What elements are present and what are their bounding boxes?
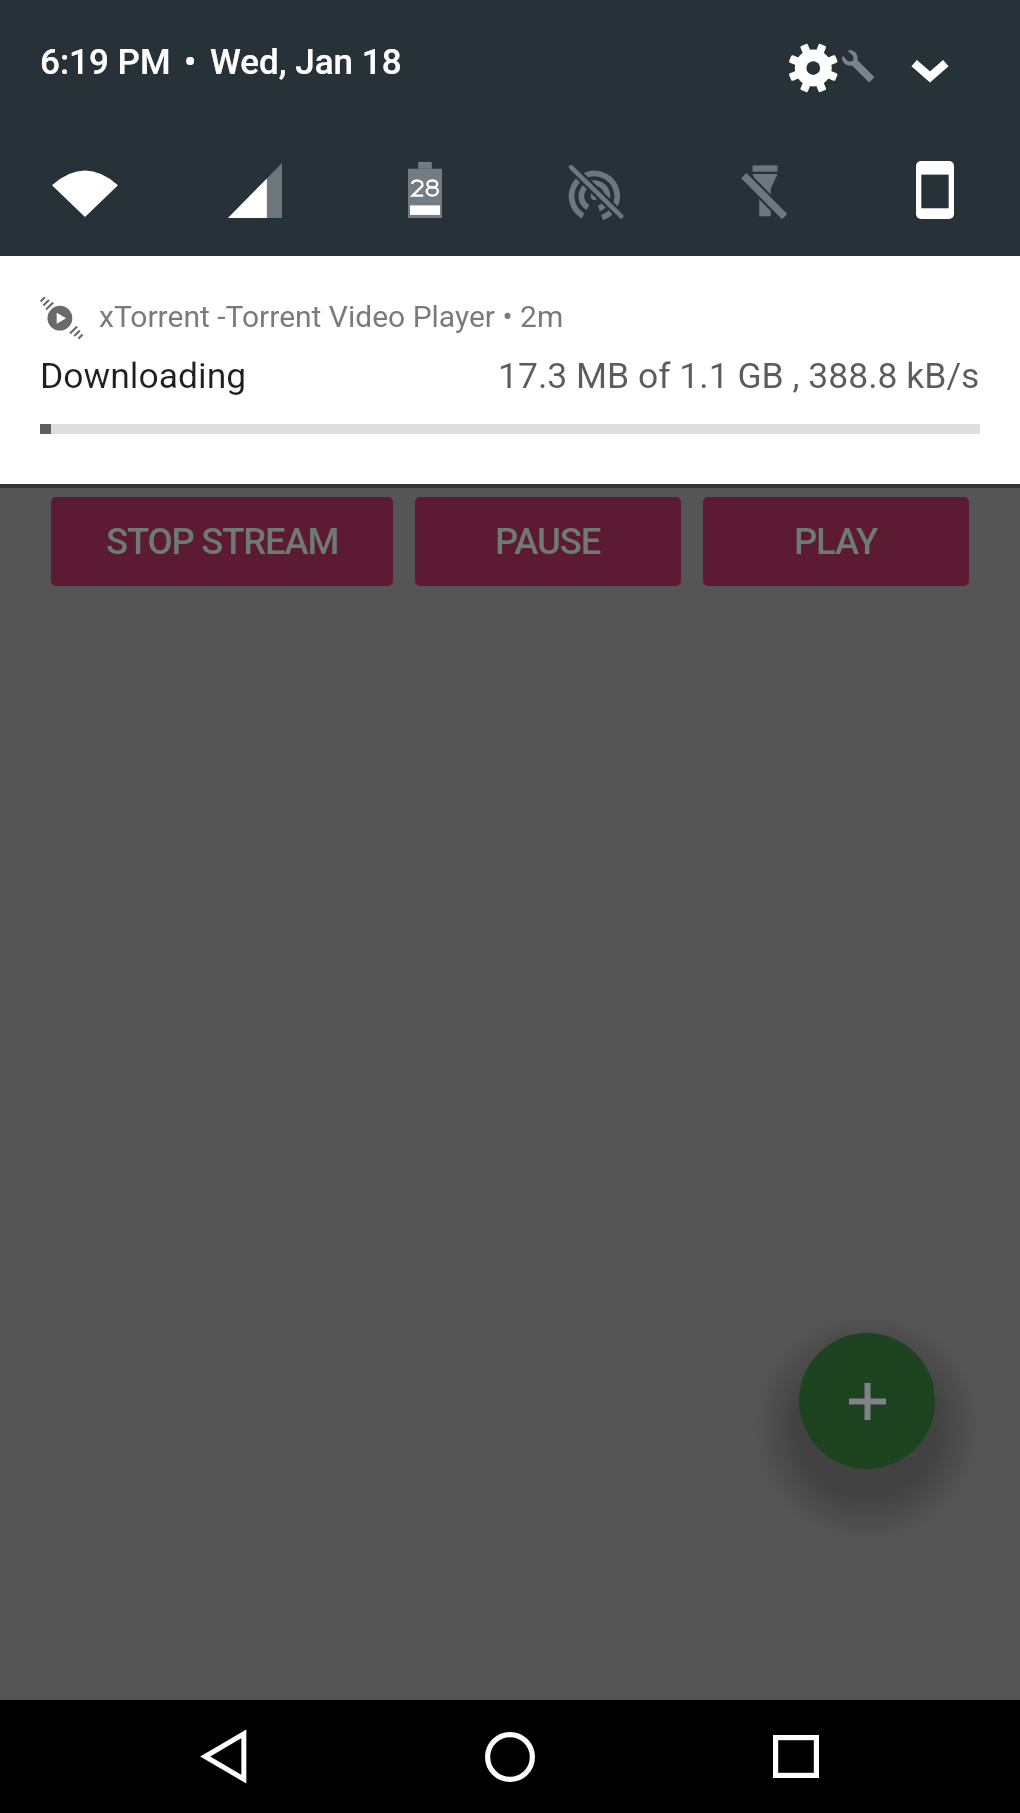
button[interactable]: STOP STREAM [51, 497, 393, 586]
button[interactable]: Flashlight off [680, 126, 850, 254]
button[interactable]: Auto rotate [850, 126, 1020, 254]
staticText: PLAY [794, 520, 878, 563]
staticText: 6:19 PM [40, 42, 171, 83]
staticText: xTorrent -Torrent Video Player • 2m [99, 299, 564, 334]
button[interactable]: Wi-Fi [0, 126, 170, 254]
staticText: PAUSE [495, 520, 601, 563]
staticText: Downloading [40, 355, 247, 397]
button[interactable]: Recent apps [741, 1700, 851, 1813]
button[interactable]: Expand [885, 20, 975, 120]
staticText: • [184, 42, 197, 83]
staticText: STOP STREAM [106, 520, 339, 563]
button[interactable]: PLAY [703, 497, 969, 586]
button[interactable]: Mobile signal [170, 126, 340, 254]
button[interactable]: Settings [776, 18, 886, 118]
staticText: 17.3 MB of 1.1 GB , 388.8 kB/s [498, 355, 980, 397]
button[interactable]: PAUSE [415, 497, 681, 586]
staticText: Wed, Jan 18 [210, 42, 402, 83]
button[interactable]: Ringer off [510, 126, 680, 254]
button[interactable]: Add torrent [799, 1333, 935, 1469]
button[interactable]: Back [169, 1700, 279, 1813]
button[interactable]: Battery 28 percent [340, 126, 510, 254]
button[interactable]: Home [455, 1700, 565, 1813]
